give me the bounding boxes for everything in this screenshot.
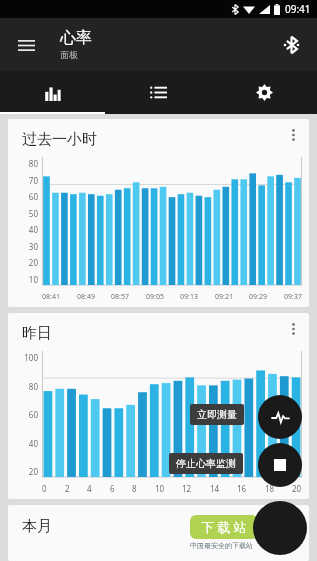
staticText: 09:05 [146, 292, 164, 302]
staticText: 2 [65, 483, 70, 494]
button[interactable]: More options [280, 316, 306, 342]
staticText: 100 [24, 352, 38, 363]
staticText: 0 [42, 483, 47, 494]
button[interactable]: 昨日 [8, 313, 309, 499]
staticText: 下 载 站 [201, 518, 247, 536]
staticText: 40 [28, 224, 38, 235]
button[interactable]: Settings tab [211, 71, 317, 114]
button[interactable]: 本月 [8, 505, 309, 561]
button[interactable]: Menu [6, 25, 46, 65]
button[interactable]: More options [280, 122, 306, 148]
staticText: 昨日 [22, 324, 52, 343]
staticText: 09:37 [284, 292, 302, 302]
button[interactable]: Stop heart rate monitoring [258, 443, 302, 487]
staticText: 8 [132, 483, 137, 494]
staticText: 4 [87, 483, 92, 494]
staticText: 08:49 [77, 292, 95, 302]
staticText: 心率 [60, 28, 92, 48]
staticText: 立即测量 [197, 408, 237, 421]
staticText: 08:41 [42, 292, 60, 302]
staticText: 14 [210, 483, 220, 494]
staticText: 09:13 [180, 292, 198, 302]
staticText: 过去一小时 [22, 130, 97, 149]
button[interactable]: Chart tab [0, 71, 105, 114]
staticText: 中国最安全的下载站 [190, 541, 253, 550]
staticText: 08:57 [111, 292, 129, 302]
staticText: 70 [28, 175, 38, 186]
staticText: 面板 [60, 49, 78, 60]
staticText: 09:21 [215, 292, 233, 302]
staticText: 停止心率监测 [176, 457, 236, 470]
staticText: 10 [155, 483, 165, 494]
staticText: 16 [237, 483, 247, 494]
button[interactable]: More actions [253, 501, 307, 555]
button[interactable]: Measure now [258, 395, 302, 439]
staticText: 10 [28, 274, 38, 285]
button[interactable]: Bluetooth [272, 26, 310, 64]
staticText: 6 [110, 483, 115, 494]
staticText: 09:29 [249, 292, 267, 302]
staticText: 20 [292, 483, 302, 494]
staticText: 80 [28, 381, 38, 392]
staticText: 20 [28, 466, 38, 477]
staticText: 20 [28, 257, 38, 268]
staticText: 18 [265, 483, 275, 494]
button[interactable]: List tab [105, 71, 211, 114]
staticText: 80 [28, 158, 38, 169]
staticText: 30 [28, 241, 38, 252]
staticText: 50 [28, 208, 38, 219]
button[interactable]: 停止心率监测 [169, 453, 243, 474]
button[interactable]: 过去一小时 [8, 119, 309, 307]
staticText: 本月 [22, 517, 52, 536]
staticText: 40 [28, 438, 38, 449]
staticText: 12 [182, 483, 192, 494]
staticText: 60 [28, 409, 38, 420]
staticText: 60 [28, 191, 38, 202]
staticText: 09:41 [285, 2, 311, 16]
button[interactable]: 立即测量 [190, 404, 244, 425]
